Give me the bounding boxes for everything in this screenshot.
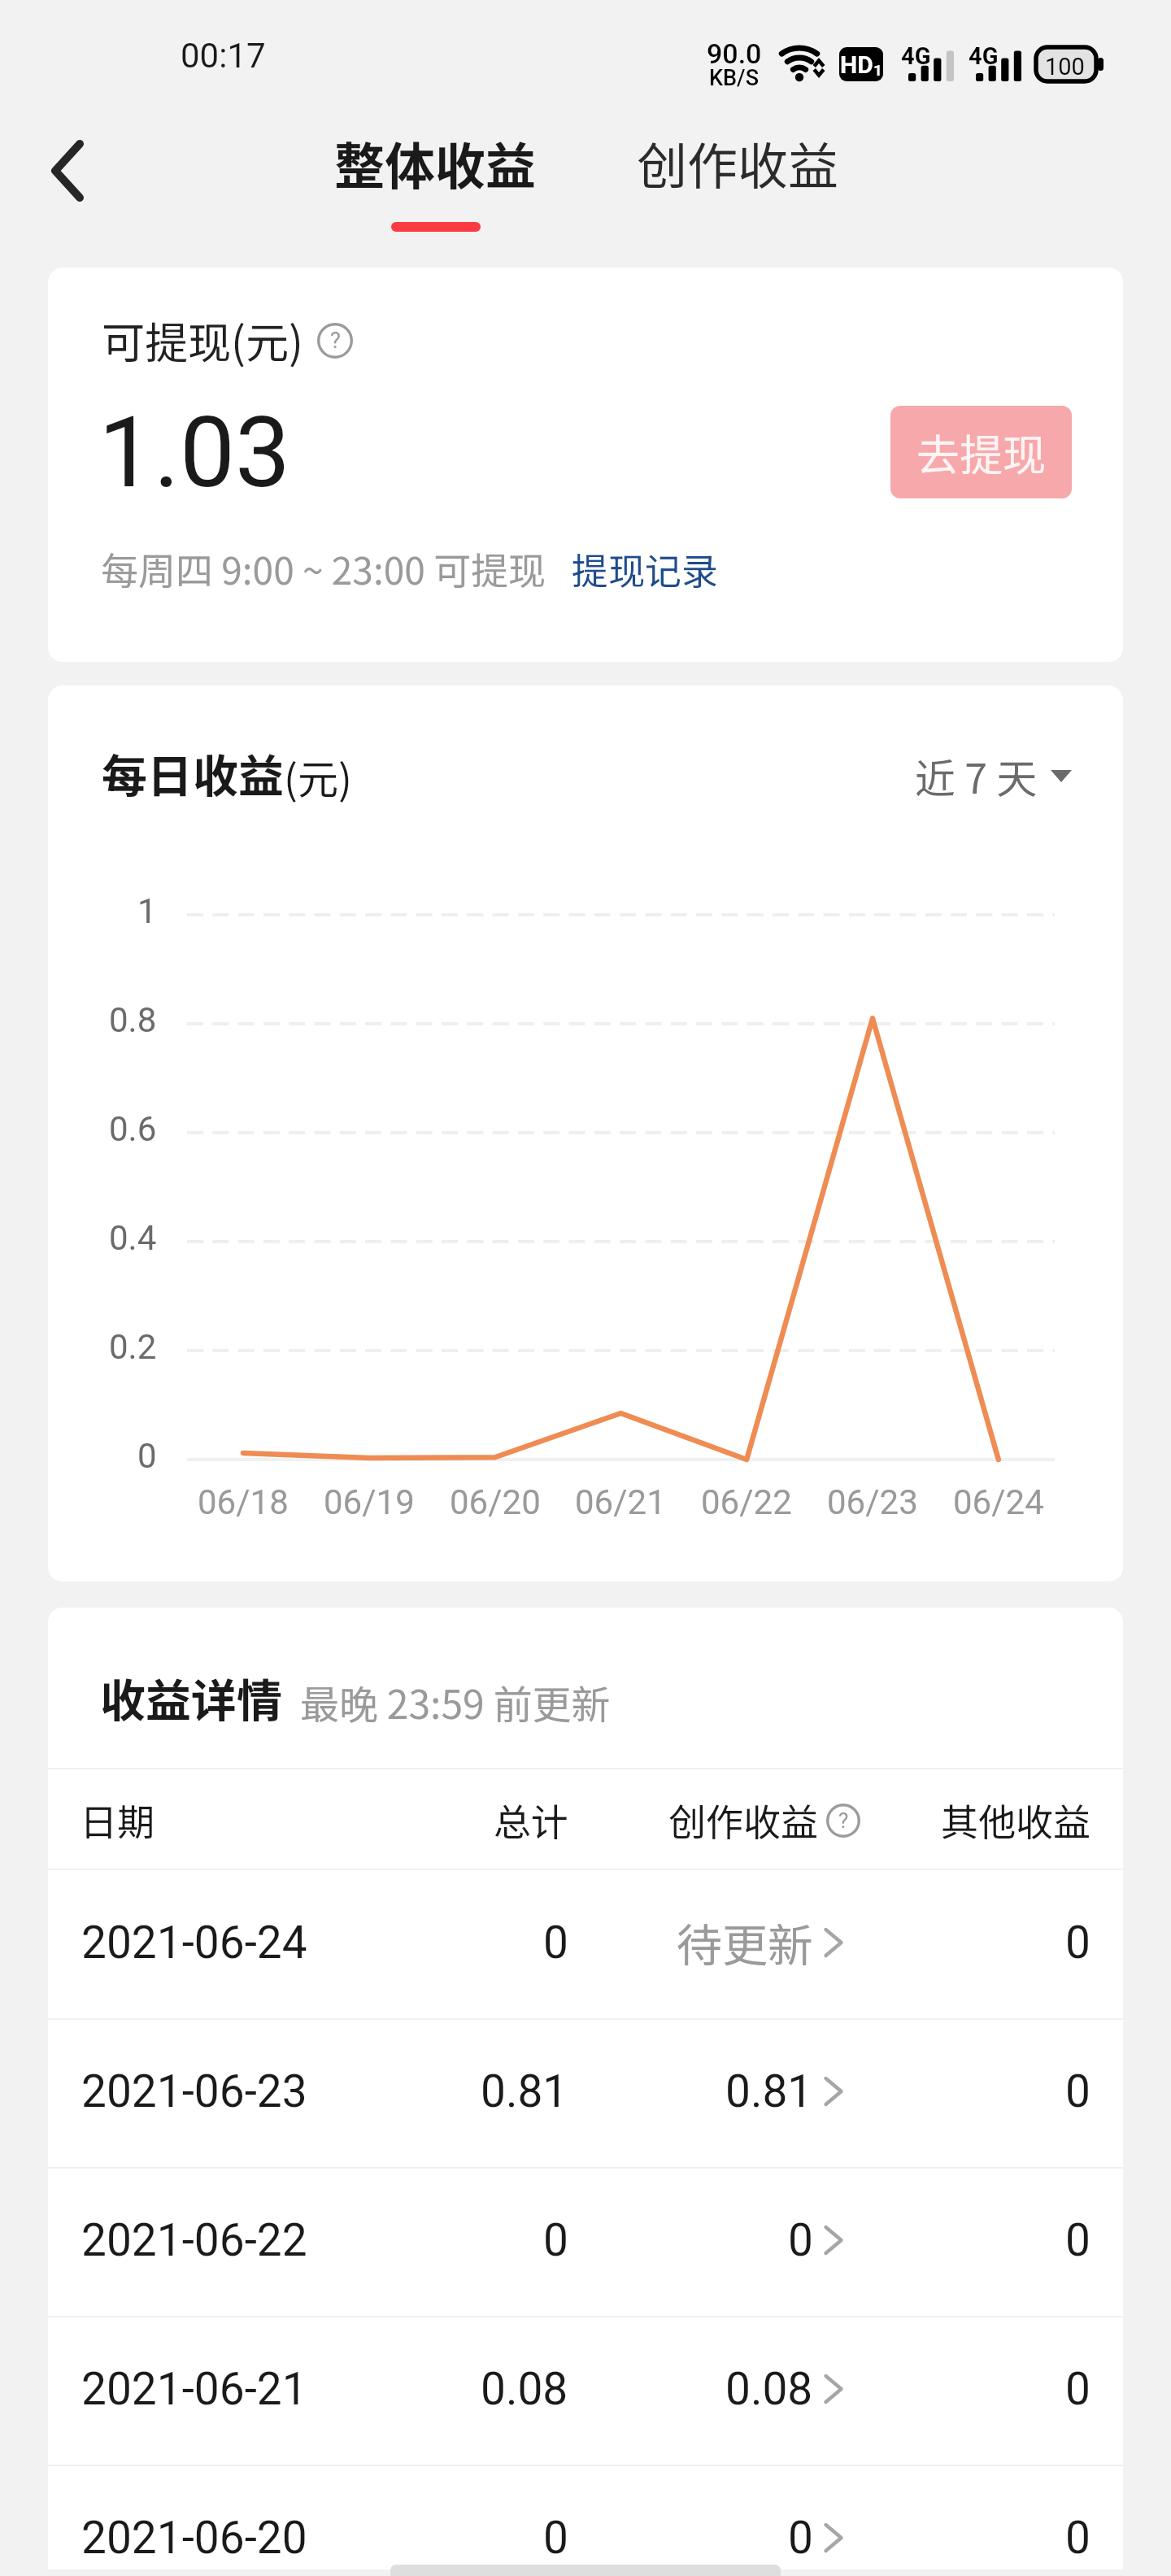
staticText: 06/19 — [324, 1482, 415, 1522]
staticText: 2021-06-23 — [81, 2065, 307, 2117]
staticText: 0 — [543, 1917, 568, 1969]
staticText: 0.4 — [109, 1218, 157, 1258]
button[interactable]: 2021-06-21 — [48, 2315, 1123, 2462]
staticText: 去提现 — [916, 421, 1046, 484]
staticText: 1.03 — [98, 395, 290, 511]
staticText: 4G — [969, 42, 999, 70]
staticText: 0 — [788, 2214, 813, 2266]
staticText: 06/18 — [198, 1482, 289, 1522]
staticText: 0 — [1065, 1917, 1090, 1969]
staticText: 06/23 — [827, 1482, 918, 1522]
staticText: 整体收益 — [334, 126, 537, 199]
staticText: 2021-06-22 — [81, 2214, 307, 2266]
staticText: 0 — [1065, 2065, 1090, 2117]
staticText: 4G — [901, 42, 931, 70]
staticText: 创作收益 — [637, 126, 839, 199]
button[interactable]: 整体收益 — [334, 126, 537, 232]
button[interactable]: 去提现 — [890, 406, 1072, 498]
staticText: 00:17 — [181, 36, 266, 76]
button[interactable]: 2021-06-23 — [48, 2017, 1123, 2165]
staticText: 每周四 9:00 ~ 23:00 可提现 — [101, 542, 546, 596]
staticText: 0.08 — [481, 2363, 568, 2415]
button[interactable]: 近 7 天 — [915, 746, 1072, 805]
staticText: ? — [838, 1808, 849, 1834]
staticText: 可提现(元) — [102, 309, 303, 372]
staticText: 2021-06-24 — [81, 1917, 307, 1969]
staticText: 0.81 — [725, 2065, 813, 2117]
staticText: 1 — [137, 891, 157, 931]
staticText: 0.08 — [725, 2363, 813, 2415]
staticText: 0.6 — [109, 1109, 157, 1149]
button[interactable]: 创作收益 — [637, 126, 839, 199]
button[interactable]: Back — [23, 126, 112, 215]
staticText: 收益详情 — [100, 1664, 282, 1730]
staticText: (元) — [284, 747, 352, 806]
staticText: 2021-06-21 — [81, 2363, 307, 2415]
staticText: 0 — [788, 2512, 813, 2564]
button[interactable]: 2021-06-20 — [48, 2464, 1123, 2569]
staticText: 每日收益 — [102, 740, 284, 806]
staticText: 2021-06-20 — [81, 2512, 307, 2564]
button[interactable]: 2021-06-22 — [48, 2166, 1123, 2313]
staticText: 0 — [543, 2214, 568, 2266]
staticText: 06/22 — [701, 1482, 792, 1522]
staticText: HD — [840, 50, 873, 79]
staticText: 06/21 — [575, 1482, 666, 1522]
staticText: ? — [330, 328, 341, 354]
staticText: 0 — [1065, 2363, 1090, 2415]
staticText: 总计 — [494, 1793, 568, 1847]
staticText: 0 — [137, 1436, 157, 1476]
staticText: 0 — [1065, 2214, 1090, 2266]
staticText: 最晚 23:59 前更新 — [300, 1673, 611, 1730]
staticText: 近 7 天 — [915, 746, 1038, 805]
staticText: 0 — [1065, 2512, 1090, 2564]
staticText: 0.2 — [109, 1327, 157, 1367]
staticText: 06/20 — [450, 1482, 541, 1522]
staticText: 1 — [873, 61, 882, 79]
staticText: 0.81 — [481, 2065, 568, 2117]
staticText: 100 — [1045, 53, 1085, 80]
staticText: 创作收益 — [668, 1793, 818, 1847]
staticText: 其他收益 — [941, 1793, 1090, 1847]
staticText: 06/24 — [953, 1482, 1044, 1522]
staticText: 待更新 — [677, 1909, 813, 1975]
button[interactable]: 提现记录 — [572, 542, 719, 595]
button[interactable]: 2021-06-24 — [48, 1869, 1123, 2016]
staticText: 日期 — [80, 1793, 155, 1847]
staticText: 0.8 — [109, 1000, 157, 1040]
staticText: 90.0 — [707, 37, 762, 70]
staticText: KB/S — [709, 65, 759, 91]
staticText: 0 — [543, 2512, 568, 2564]
staticText: 提现记录 — [572, 542, 719, 595]
